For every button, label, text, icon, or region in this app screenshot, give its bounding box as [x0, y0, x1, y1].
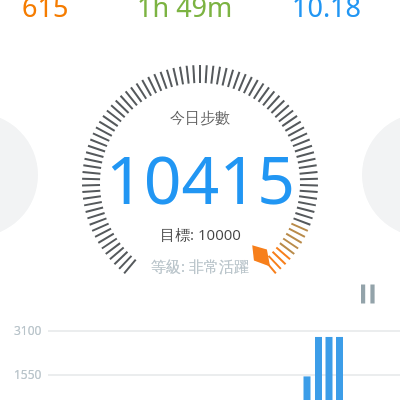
staticText: 10415	[106, 133, 295, 223]
staticText: 1h 49m	[137, 0, 233, 25]
staticText: 今日步數	[170, 109, 230, 128]
staticText: 615	[22, 0, 69, 25]
staticText: 3100	[14, 322, 42, 338]
button[interactable]: 615	[0, 0, 400, 400]
button[interactable]: 今日步數	[0, 0, 400, 400]
other: Daily step goal gauge	[0, 0, 400, 400]
button[interactable]: Pause	[355, 282, 383, 306]
staticText: 等級: 非常活躍	[151, 256, 249, 276]
staticText: 1550	[14, 366, 42, 382]
staticText: 10.18	[292, 0, 362, 25]
other: Step history chart	[0, 0, 400, 400]
staticText: 目標: 10000	[160, 224, 241, 244]
